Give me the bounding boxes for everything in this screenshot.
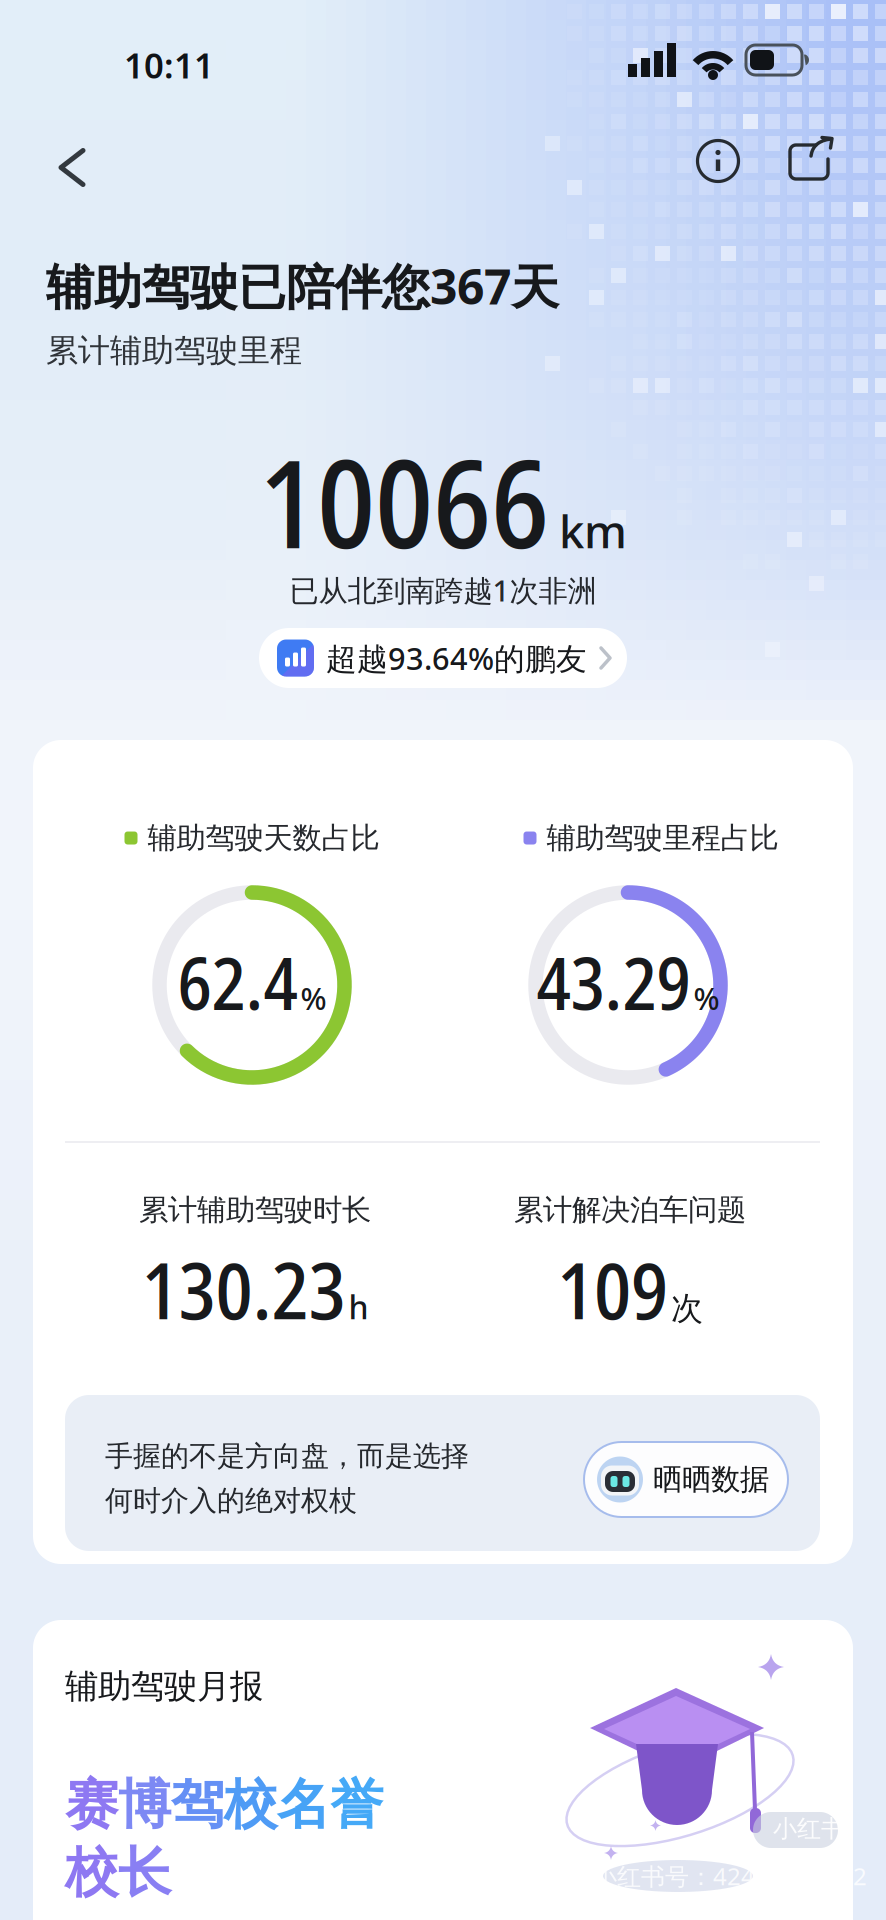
button[interactable]: Back <box>58 148 86 187</box>
staticText: 累计解决泊车问题 <box>514 1192 746 1228</box>
staticText: 次 <box>671 1289 703 1328</box>
staticText: 校 <box>224 1772 277 1837</box>
staticText: 43.29 <box>536 933 690 1031</box>
staticText: 超越93.64%的鹏友 <box>326 638 587 678</box>
staticText: 10066 <box>259 418 549 584</box>
staticText: km <box>559 501 627 561</box>
staticText: % <box>693 978 719 1018</box>
staticText: 109 <box>557 1236 668 1342</box>
staticText: 长 <box>118 1840 171 1905</box>
staticText: 10:11 <box>124 42 214 88</box>
staticText: 辅助驾驶已陪伴您367天 <box>46 254 559 318</box>
staticText: 62.4 <box>177 933 297 1031</box>
staticText: % <box>300 978 326 1018</box>
staticText: 小红书 <box>773 1814 845 1843</box>
button[interactable]: 超越93.64%的鹏友 <box>259 628 627 688</box>
button[interactable]: Share <box>786 138 832 184</box>
staticText: 130.23 <box>141 1236 345 1342</box>
staticText: 累计辅助驾驶里程 <box>46 331 302 370</box>
staticText: 何时介入的绝对权杖 <box>105 1483 357 1518</box>
staticText: 累计辅助驾驶时长 <box>139 1192 371 1228</box>
staticText: 博 <box>118 1772 171 1837</box>
staticText: 名 <box>277 1772 330 1837</box>
staticText: 辅助驾驶里程占比 <box>546 820 778 856</box>
staticText: 校 <box>65 1840 118 1905</box>
staticText: 辅助驾驶月报 <box>65 1666 263 1707</box>
staticText: 已从北到南跨越1次非洲 <box>289 570 596 609</box>
staticText: 驾 <box>171 1772 224 1837</box>
staticText: 手握的不是方向盘，而是选择 <box>105 1439 469 1473</box>
staticText: 辅助驾驶天数占比 <box>147 820 379 856</box>
staticText: 誉 <box>330 1772 383 1837</box>
button[interactable]: Info <box>696 139 740 183</box>
button[interactable]: 晒晒数据 <box>584 1442 788 1517</box>
staticText: 晒晒数据 <box>653 1461 769 1497</box>
staticText: 我的小红书号：42458015092 <box>545 1860 867 1892</box>
staticText: 赛 <box>65 1772 118 1837</box>
staticText: h <box>348 1286 368 1328</box>
